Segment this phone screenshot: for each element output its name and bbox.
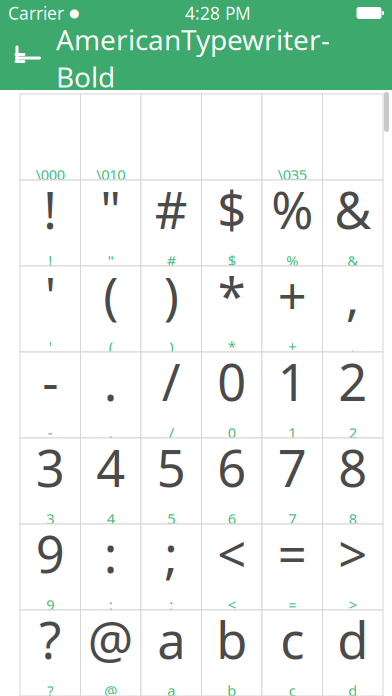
button[interactable]: 2 — [322, 352, 383, 438]
staticText: 6 — [228, 509, 236, 528]
button[interactable]: 6 — [201, 438, 262, 524]
button[interactable] — [20, 94, 80, 180]
button[interactable] — [262, 94, 322, 180]
staticText: 8 — [349, 509, 357, 528]
button[interactable]: ( — [80, 266, 141, 352]
staticText: \000 — [36, 165, 65, 184]
button[interactable]: 5 — [141, 438, 201, 524]
button[interactable]: " — [80, 180, 141, 266]
staticText: , — [351, 337, 355, 356]
button[interactable]: 0 — [201, 352, 262, 438]
button[interactable]: 9 — [20, 524, 80, 610]
button[interactable]: < — [201, 524, 262, 610]
button[interactable]: ' — [20, 266, 80, 352]
staticText: $ — [228, 251, 236, 270]
staticText: + — [288, 337, 296, 356]
staticText: ( — [103, 262, 118, 329]
button[interactable]: / — [141, 352, 201, 438]
button[interactable]: + — [262, 266, 322, 352]
button[interactable]: # — [141, 180, 201, 266]
button[interactable]: = — [262, 524, 322, 610]
staticText: / — [162, 348, 181, 415]
button[interactable]: ; — [141, 524, 201, 610]
staticText: ? — [47, 681, 53, 696]
staticText: , — [346, 262, 360, 329]
staticText: ) — [164, 262, 179, 329]
staticText: : — [104, 520, 118, 587]
button[interactable]: 1 — [262, 352, 322, 438]
staticText: Carrier — [8, 1, 64, 24]
staticText: 3 — [46, 509, 54, 528]
button[interactable]: 4 — [80, 438, 141, 524]
button[interactable]: . — [80, 352, 141, 438]
staticText: - — [48, 423, 53, 442]
button[interactable]: * — [201, 266, 262, 352]
staticText: ' — [45, 262, 56, 329]
staticText: 1 — [278, 348, 307, 415]
staticText: 7 — [288, 509, 296, 528]
button[interactable]: - — [20, 352, 80, 438]
staticText: = — [288, 595, 296, 614]
staticText: ; — [169, 595, 173, 614]
staticText: 9 — [36, 520, 65, 587]
staticText: ; — [164, 520, 178, 587]
staticText: * — [228, 337, 236, 356]
staticText: d — [348, 681, 357, 696]
staticText: 0 — [228, 423, 236, 442]
staticText: b — [227, 681, 236, 696]
staticText: @ — [104, 681, 117, 696]
button[interactable]: d — [322, 610, 383, 696]
staticText: . — [104, 348, 118, 415]
staticText: d — [337, 606, 368, 673]
button[interactable]: ? — [20, 610, 80, 696]
button[interactable]: % — [262, 180, 322, 266]
staticText: 5 — [167, 509, 175, 528]
staticText: AmericanTypewriter-Bold — [56, 21, 330, 95]
button[interactable]: , — [322, 266, 383, 352]
staticText: @ — [88, 606, 134, 673]
staticText: 8 — [338, 434, 367, 501]
staticText: 9 — [46, 595, 54, 614]
button[interactable]: : — [80, 524, 141, 610]
button[interactable]: ) — [141, 266, 201, 352]
staticText: 0 — [217, 348, 246, 415]
staticText: c — [289, 681, 296, 696]
staticText: 5 — [157, 434, 186, 501]
staticText: 4 — [107, 509, 115, 528]
staticText: % — [271, 176, 313, 243]
button[interactable]: 8 — [322, 438, 383, 524]
button[interactable]: > — [322, 524, 383, 610]
staticText: b — [216, 606, 247, 673]
staticText: 4 — [96, 434, 125, 501]
staticText: 4:28 PM — [185, 1, 251, 24]
staticText: 2 — [338, 348, 367, 415]
button[interactable]: $ — [201, 180, 262, 266]
staticText: c — [280, 606, 304, 673]
staticText: " — [100, 176, 121, 243]
staticText: % — [286, 251, 298, 270]
button[interactable]: c — [262, 610, 322, 696]
staticText: < — [228, 595, 236, 614]
button[interactable]: @ — [80, 610, 141, 696]
button[interactable]: & — [322, 180, 383, 266]
button[interactable]: a — [141, 610, 201, 696]
staticText: ) — [169, 337, 173, 356]
button[interactable]: 7 — [262, 438, 322, 524]
staticText: 6 — [217, 434, 246, 501]
staticText: & — [334, 176, 371, 243]
staticText: $ — [217, 176, 246, 243]
button[interactable] — [322, 94, 383, 180]
staticText: a — [167, 681, 175, 696]
button[interactable]: b — [201, 610, 262, 696]
button[interactable]: Back — [0, 26, 56, 90]
button[interactable]: 3 — [20, 438, 80, 524]
staticText: ● — [69, 6, 79, 20]
button[interactable] — [80, 94, 141, 180]
staticText: / — [169, 423, 174, 442]
button[interactable] — [141, 94, 201, 180]
staticText: ! — [48, 251, 52, 270]
button[interactable]: ! — [20, 180, 80, 266]
staticText: \035 — [278, 165, 307, 184]
button[interactable] — [201, 94, 262, 180]
staticText: > — [349, 595, 357, 614]
